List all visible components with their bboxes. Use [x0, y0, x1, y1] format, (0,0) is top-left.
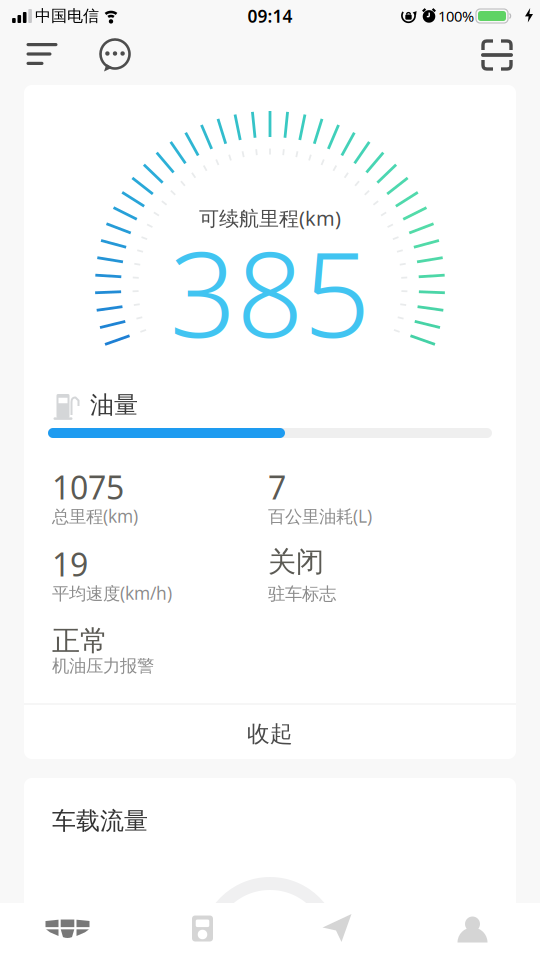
staticText: 可续航里程(km) — [199, 205, 341, 231]
staticText: 收起 — [247, 720, 293, 748]
staticText: 驻车标志 — [268, 583, 336, 605]
staticText: 100% — [438, 6, 474, 26]
staticText: 关闭 — [268, 545, 324, 579]
staticText: 09:14 — [247, 4, 292, 27]
button[interactable] — [481, 39, 513, 71]
staticText: 总里程(km) — [52, 504, 138, 527]
staticText: 7 — [268, 466, 286, 508]
staticText: 机油压力报警 — [52, 655, 154, 677]
button[interactable] — [0, 900, 135, 957]
button[interactable] — [26, 43, 57, 65]
staticText: 平均速度(km/h) — [52, 581, 172, 604]
staticText: 百公里油耗(L) — [268, 504, 372, 527]
staticText: 车载流量 — [52, 806, 148, 836]
button[interactable] — [98, 38, 132, 76]
staticText: 19 — [52, 543, 88, 585]
staticText: 中国电信 — [35, 6, 99, 26]
button[interactable] — [135, 900, 270, 957]
staticText: 385 — [169, 214, 370, 370]
button[interactable]: 收起 — [24, 707, 516, 761]
button[interactable] — [270, 899, 405, 956]
staticText: 正常 — [52, 624, 108, 658]
staticText: 油量 — [90, 390, 138, 420]
button[interactable] — [405, 900, 540, 957]
staticText: 1075 — [52, 466, 124, 508]
